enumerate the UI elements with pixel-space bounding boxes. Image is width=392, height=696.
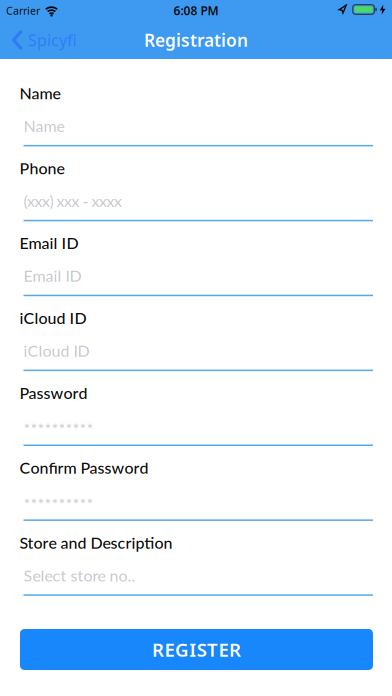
staticText: ********** xyxy=(23,419,93,438)
staticText: Email ID xyxy=(19,233,78,252)
staticText: Spicyfi xyxy=(28,29,77,51)
staticText: Phone xyxy=(19,158,64,178)
staticText: Name xyxy=(19,83,60,103)
staticText: ********** xyxy=(23,494,93,513)
staticText: Confirm Password xyxy=(19,458,148,477)
staticText: iCloud ID xyxy=(19,308,86,327)
staticText: REGISTER xyxy=(152,637,241,662)
staticText: Email ID xyxy=(23,266,81,285)
staticText: (xxx) xxx - xxxx xyxy=(23,191,122,210)
staticText: Select store no.. xyxy=(23,566,135,585)
staticText: Carrier xyxy=(6,3,40,18)
staticText: Registration xyxy=(144,28,248,51)
staticText: 6:08 PM xyxy=(173,2,218,18)
staticText: Store and Description xyxy=(19,533,172,552)
staticText: Name xyxy=(23,116,64,135)
staticText: iCloud ID xyxy=(23,341,89,360)
staticText: Password xyxy=(19,383,87,402)
